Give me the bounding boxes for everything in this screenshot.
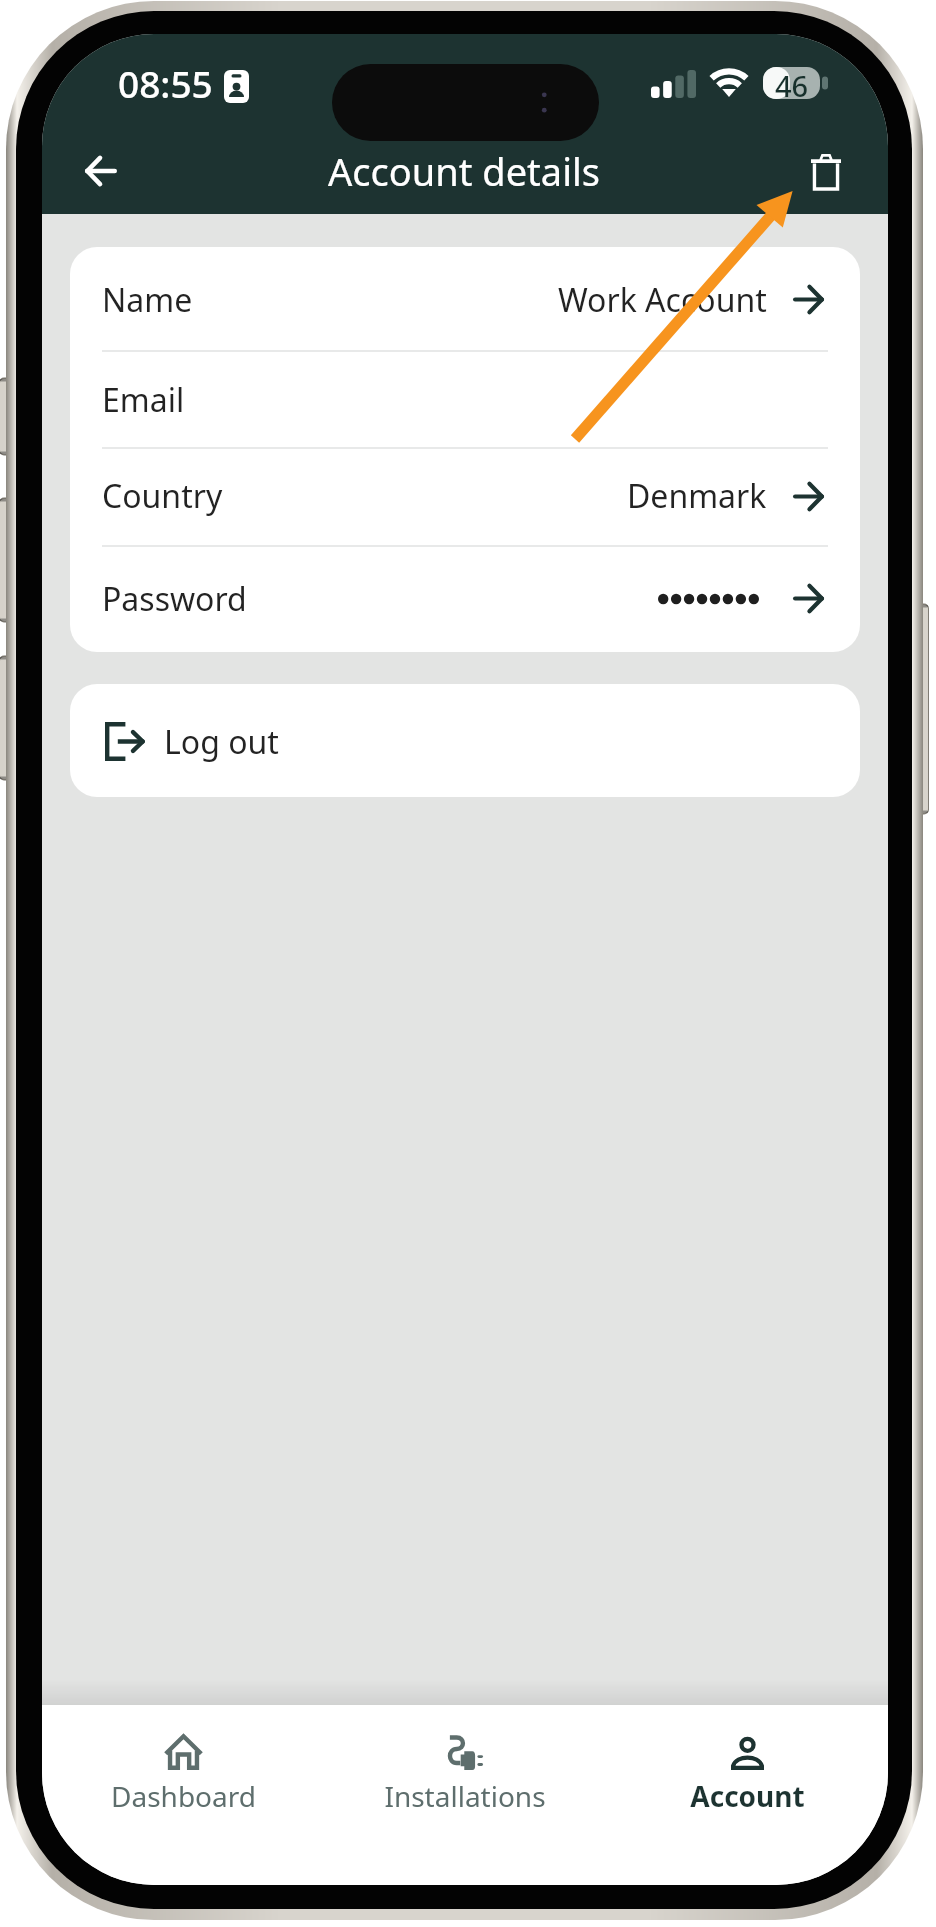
button[interactable]: Password [70,547,860,652]
button[interactable]: Installations [324,1705,606,1885]
button[interactable]: Dashboard [42,1705,324,1885]
button[interactable]: Account [606,1705,888,1885]
staticText: Country [102,474,223,518]
staticText: Account details [328,145,600,197]
staticText: Denmark [627,474,767,518]
staticText: Dashboard [111,1777,256,1815]
staticText: Account [690,1777,805,1815]
staticText: 08:55 [118,58,213,108]
staticText: Name [102,278,193,322]
staticText: Email [102,378,185,422]
staticText: Work Account [558,278,767,322]
button[interactable]: Email [70,352,860,447]
staticText: Password [102,577,247,621]
staticText: 46 [775,66,809,98]
staticText: Installations [384,1777,546,1815]
button[interactable]: Log out [70,684,860,797]
button[interactable]: Back [69,139,133,203]
button[interactable]: Delete [794,139,858,203]
staticText: Log out [164,720,279,764]
button[interactable]: Country [70,449,860,545]
button[interactable]: Name [70,247,860,350]
